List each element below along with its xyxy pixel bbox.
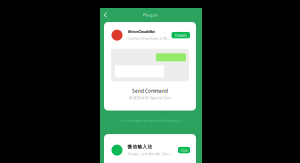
staticText: Connect OpenClaw to Wei... <box>127 36 169 41</box>
staticText: 发送指令到 Special Case <box>129 95 171 100</box>
button[interactable]: Back <box>102 10 109 20</box>
staticText: Use <box>180 147 187 153</box>
staticText: Simple, user-friendly, fast i... <box>127 152 173 156</box>
staticText: Use the app securely with the plug-in <box>120 118 181 123</box>
staticText: Plug-in <box>143 12 158 18</box>
staticText: WeixinClaudeBot <box>127 29 154 34</box>
staticText: Send Command <box>132 88 168 94</box>
button[interactable]: Details <box>171 32 190 38</box>
staticText: Details <box>175 32 187 38</box>
staticText: 微信输入法 <box>127 144 152 150</box>
button[interactable]: Use <box>178 147 190 153</box>
